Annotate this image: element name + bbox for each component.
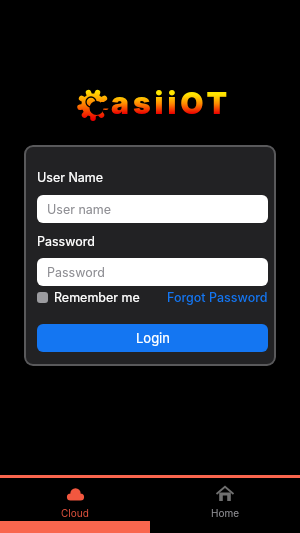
staticText: Cloud (61, 507, 89, 519)
staticText: Password (37, 234, 95, 249)
button[interactable]: Cloud (0, 478, 150, 521)
staticText: User name (47, 202, 112, 217)
staticText: Home (211, 507, 240, 519)
button[interactable]: Remember me (37, 290, 140, 305)
button[interactable]: Home (150, 478, 300, 521)
button[interactable]: Login (37, 324, 268, 352)
staticText: Forgot Password (167, 290, 268, 305)
staticText: Login (136, 330, 170, 346)
button[interactable]: Password (37, 258, 268, 286)
staticText: asiiOT (111, 85, 232, 121)
staticText: Remember me (54, 290, 140, 305)
button[interactable]: Forgot Password (167, 290, 268, 305)
button[interactable]: User name (37, 195, 268, 223)
staticText: Password (47, 265, 105, 280)
staticText: User Name (37, 170, 104, 185)
